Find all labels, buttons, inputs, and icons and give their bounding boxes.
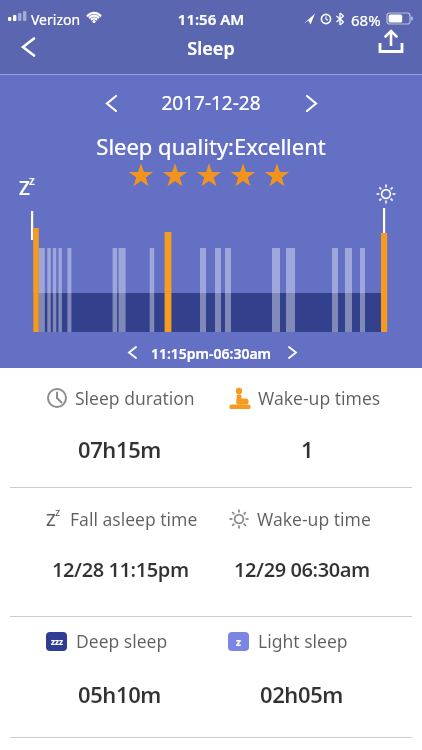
staticText: 12/28 11:15pm: [52, 556, 189, 583]
button[interactable]: [10, 27, 50, 67]
staticText: Fall asleep time: [70, 507, 198, 531]
staticText: 11:15pm-06:30am: [0, 344, 422, 363]
staticText: Sleep duration: [75, 386, 195, 410]
staticText: 11:56 AM: [0, 9, 422, 29]
button[interactable]: [96, 90, 126, 116]
button[interactable]: Z: [46, 507, 198, 531]
button[interactable]: Sleep duration: [46, 386, 195, 410]
staticText: z: [236, 635, 241, 649]
staticText: Light sleep: [258, 629, 348, 653]
staticText: 05h10m: [78, 679, 162, 709]
staticText: Z: [46, 508, 56, 531]
staticText: 02h05m: [260, 679, 344, 709]
staticText: 1: [301, 434, 314, 464]
staticText: Sleep quality:Excellent: [0, 131, 422, 161]
staticText: zzz: [51, 636, 63, 647]
staticText: Z: [19, 175, 30, 201]
button[interactable]: Wake-up time: [228, 507, 371, 531]
staticText: Wake-up time: [257, 507, 371, 531]
button[interactable]: Wake-up times: [228, 386, 381, 410]
staticText: z: [55, 504, 61, 519]
staticText: Verizon: [31, 10, 81, 29]
staticText: 2017-12-28: [0, 90, 422, 116]
staticText: z: [29, 172, 35, 188]
staticText: 68%: [351, 10, 381, 30]
staticText: 12/29 06:30am: [234, 556, 370, 583]
button[interactable]: [120, 340, 144, 364]
button[interactable]: zzz: [46, 629, 168, 653]
staticText: 07h15m: [78, 434, 162, 464]
button[interactable]: [280, 340, 304, 364]
staticText: Sleep: [0, 36, 422, 61]
button[interactable]: z: [228, 629, 348, 653]
button[interactable]: [296, 90, 326, 116]
staticText: Deep sleep: [76, 629, 168, 653]
button[interactable]: [373, 28, 411, 66]
staticText: Wake-up times: [258, 386, 381, 410]
